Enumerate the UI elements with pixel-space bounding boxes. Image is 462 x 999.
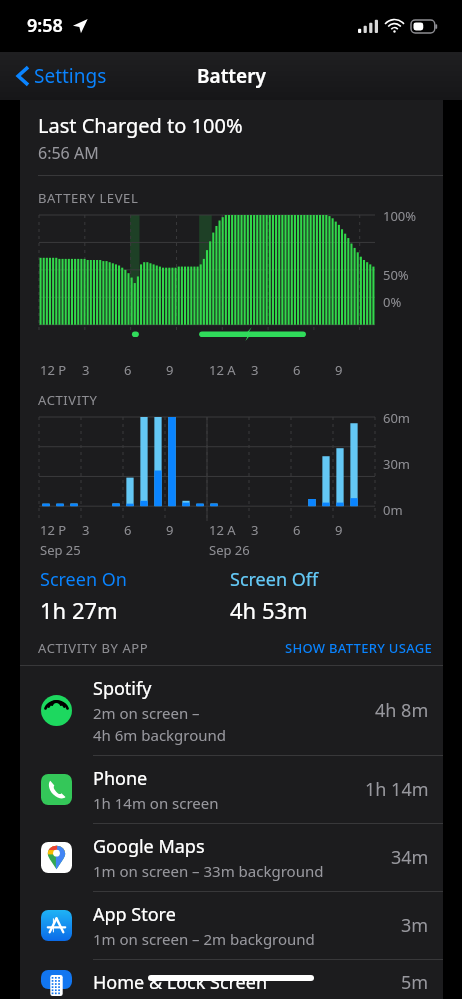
staticText: 1h 14m on screen [93,793,219,813]
staticText: Settings [34,63,107,89]
button[interactable]: Settings [12,57,112,95]
staticText: 6:56 AM [38,142,99,164]
staticText: Phone [93,766,148,791]
staticText: Spotify [93,676,152,701]
staticText: 5m [401,970,429,989]
staticText: SHOW BATTERY USAGE [285,639,433,657]
staticText: 6 [293,361,301,379]
staticText: 6 [124,361,132,379]
staticText: 4h 53m [230,595,308,625]
button[interactable]: Home & Lock Screen [20,960,443,999]
staticText: 1h 27m [40,595,118,625]
button[interactable]: SHOW BATTERY USAGE [285,639,433,657]
staticText: Sep 26 [209,541,250,559]
staticText: 4h 6m background [93,725,227,745]
staticText: 60m [383,409,411,427]
staticText: 9 [166,361,174,379]
staticText: 3 [251,361,259,379]
button[interactable]: Spotify [20,666,443,755]
staticText: BATTERY LEVEL [38,189,139,207]
staticText: 12 A [209,361,236,379]
staticText: 3 [82,361,90,379]
staticText: 34m [391,845,429,870]
staticText: 2m on screen – [93,703,200,723]
staticText: Screen Off [230,567,319,592]
staticText: 0% [383,293,402,311]
staticText: App Store [93,902,176,927]
staticText: 9 [166,521,174,539]
staticText: Home & Lock Screen [93,970,268,989]
staticText: 6 [124,521,132,539]
button[interactable]: Google Maps [20,824,443,891]
staticText: Google Maps [93,834,205,859]
staticText: 100% [383,207,417,225]
staticText: 1m on screen – 2m background [93,929,315,949]
button[interactable]: App Store [20,892,443,959]
staticText: ACTIVITY BY APP [38,639,149,657]
staticText: 1h 14m [365,777,429,802]
staticText: 12 P [40,361,67,379]
staticText: 30m [383,455,411,473]
staticText: 12 A [209,521,236,539]
staticText: Last Charged to 100% [38,112,243,139]
staticText: 9:58 [27,13,63,38]
staticText: Sep 25 [40,541,81,559]
staticText: 1m on screen – 33m background [93,861,324,881]
staticText: 3m [401,913,429,938]
staticText: 6 [293,521,301,539]
staticText: 9 [335,521,343,539]
button[interactable]: Phone [20,756,443,823]
staticText: 9 [335,361,343,379]
staticText: 0m [383,501,403,519]
staticText: Screen On [40,567,127,592]
staticText: 12 P [40,521,67,539]
staticText: 4h 8m [375,698,429,723]
staticText: 3 [251,521,259,539]
staticText: Battery [197,63,266,89]
staticText: ACTIVITY [38,391,98,409]
staticText: 50% [383,266,409,284]
staticText: 3 [82,521,90,539]
